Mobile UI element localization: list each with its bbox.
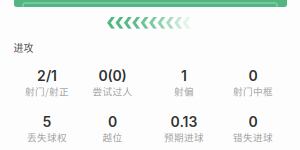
staticText: 进攻 xyxy=(13,40,33,55)
staticText: 0(0) xyxy=(98,67,126,84)
staticText: 0 xyxy=(248,67,257,84)
staticText: 丢失球权 xyxy=(27,130,67,144)
button[interactable]: 0 xyxy=(0,0,300,150)
staticText: 0 xyxy=(248,113,257,130)
staticText: 尝试过人 xyxy=(92,84,132,98)
staticText: 5 xyxy=(42,113,51,130)
button[interactable]: 0 xyxy=(0,0,300,150)
button[interactable]: 1 xyxy=(0,0,300,150)
button[interactable]: 0.13 xyxy=(0,0,300,150)
staticText: 1 xyxy=(181,67,187,84)
staticText: 射门/射正 xyxy=(25,84,69,98)
button[interactable]: 5 xyxy=(0,0,300,150)
staticText: 射偏 xyxy=(174,84,194,98)
button[interactable]: 0(0) xyxy=(0,0,300,150)
staticText: 射门中框 xyxy=(233,84,273,98)
staticText: 0 xyxy=(108,113,117,130)
staticText: 0.13 xyxy=(170,113,197,130)
button[interactable]: 2/1 xyxy=(0,0,300,150)
staticText: 预期进球 xyxy=(164,130,204,144)
button[interactable]: 0 xyxy=(0,0,300,150)
staticText: 2/1 xyxy=(37,67,57,84)
staticText: 越位 xyxy=(102,130,122,144)
staticText: 错失进球 xyxy=(233,130,273,144)
